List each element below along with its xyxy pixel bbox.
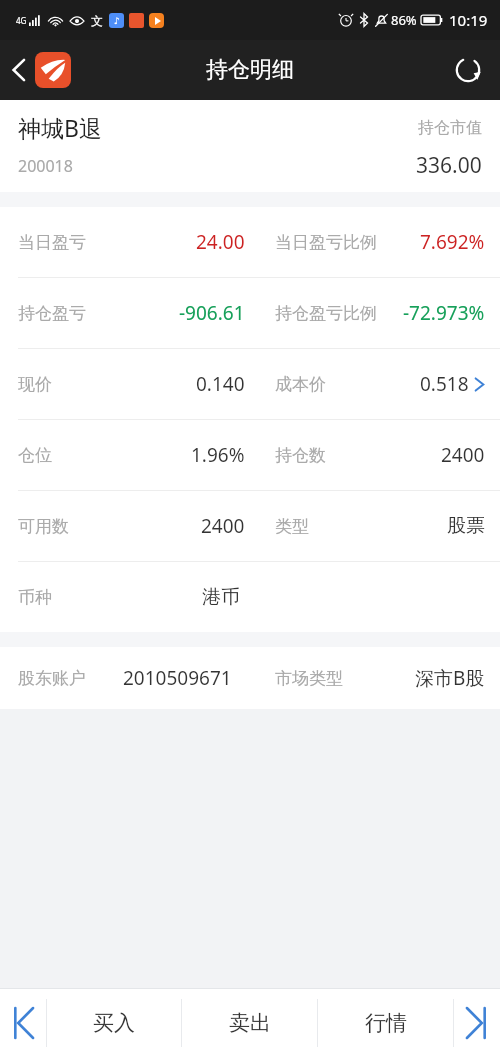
button[interactable]: 持仓盈亏 [0,278,500,348]
button[interactable]: 当日盈亏 [0,207,500,277]
staticText: ♪ [114,16,120,26]
staticText: 2400 [441,442,485,468]
button[interactable]: 行情 [318,989,453,1056]
staticText: 24.00 [196,229,245,255]
staticText: -72.973% [403,300,485,326]
staticText: 港币 [202,585,240,609]
staticText: 持仓盈亏比例 [275,303,377,324]
staticText: 持仓盈亏 [18,303,86,324]
staticText: 行情 [365,1010,407,1036]
staticText: 持仓数 [275,445,326,466]
staticText: 0.518 [420,371,469,397]
staticText: 持仓市值 [418,118,482,138]
staticText: 股东账户 [18,668,86,689]
staticText: 仓位 [18,445,52,466]
staticText: 1.96% [191,442,245,468]
staticText: -906.61 [179,300,245,326]
staticText: 当日盈亏比例 [275,232,377,253]
staticText: 4G [16,15,27,26]
button[interactable]: 现价 [0,349,500,419]
button[interactable]: Refresh [436,40,500,100]
staticText: 可用数 [18,516,69,537]
staticText: 文 [91,13,103,28]
staticText: 86% [391,11,417,29]
button[interactable]: First [0,989,46,1056]
button[interactable]: 可用数 [0,491,500,561]
staticText: 持仓明细 [206,56,294,84]
button[interactable]: Back [0,40,77,100]
staticText: 336.00 [416,151,482,180]
staticText: 10:19 [449,10,488,30]
button[interactable]: 仓位 [0,420,500,490]
staticText: 2010509671 [123,665,232,691]
staticText: 股票 [447,514,485,538]
staticText: 2400 [201,513,245,539]
staticText: 类型 [275,516,309,537]
button[interactable]: 买入 [47,989,181,1056]
button[interactable]: 股东账户 [0,647,500,709]
staticText: 现价 [18,374,52,395]
staticText: 7.692% [420,229,485,255]
staticText: 神城B退 [18,112,102,143]
button[interactable]: Last [454,989,500,1056]
staticText: 深市B股 [415,665,485,691]
staticText: 币种 [18,587,52,608]
staticText: 买入 [93,1010,135,1036]
button[interactable]: 神城B退 [0,100,500,192]
staticText: 当日盈亏 [18,232,86,253]
staticText: 成本价 [275,374,326,395]
button[interactable]: 币种 [0,562,500,632]
staticText: 卖出 [229,1010,271,1036]
staticText: 0.140 [196,371,245,397]
button[interactable]: 卖出 [182,989,317,1056]
staticText: 市场类型 [275,668,343,689]
staticText: 200018 [18,155,73,177]
